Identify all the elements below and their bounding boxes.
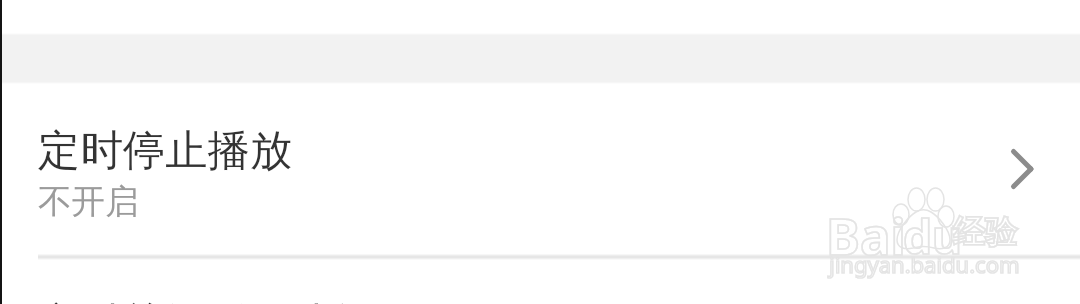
button[interactable]: 定时关闭播放功能 [0, 258, 1080, 304]
staticText: 定时关闭播放功能 [38, 298, 374, 304]
other: 打开定时停止播放设置 [993, 130, 1049, 206]
staticText: 经验 [953, 212, 1017, 252]
staticText: du [903, 205, 962, 268]
button[interactable]: 定时停止播放 [0, 84, 1080, 256]
staticText: jingyan.baidu.com [829, 249, 1020, 279]
staticText: 定时停止播放 [38, 124, 293, 177]
staticText: 不开启 [38, 181, 139, 223]
staticText: Bai [826, 200, 906, 269]
